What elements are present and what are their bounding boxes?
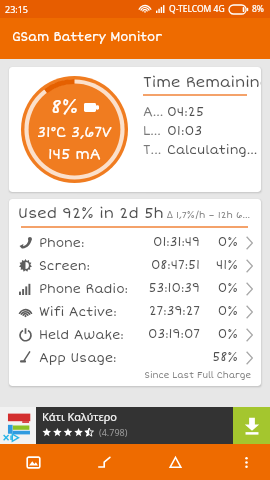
button[interactable]: Charts (80, 444, 128, 480)
staticText: 08:47:51 (145, 258, 200, 273)
staticText: 31°C 3,67V (37, 124, 112, 141)
staticText: 53:10:39 (145, 281, 200, 296)
staticText: Calculating... (167, 142, 258, 157)
staticText: Held Awake: (39, 327, 124, 342)
button[interactable]: Phone Radio: (9, 277, 261, 300)
button[interactable]: Phone: (9, 231, 261, 254)
staticText: 0% (200, 235, 238, 250)
staticText: 145 mA (48, 146, 101, 163)
staticText: 41% (200, 258, 238, 273)
staticText: Κάτι Καλύτερο (42, 409, 117, 424)
staticText: Since Last Full Charge (9, 370, 251, 380)
button[interactable]: Alerts (151, 444, 199, 480)
staticText: 23:15 (5, 3, 29, 15)
staticText: 8% (252, 3, 264, 15)
button[interactable]: Install (233, 407, 270, 444)
staticText: 0% (200, 281, 238, 296)
staticText: Phone: (39, 235, 85, 250)
staticText: L... (143, 123, 167, 138)
staticText: 01:03 (167, 123, 203, 138)
staticText: Phone Radio: (39, 281, 129, 296)
staticText: 58% (200, 350, 238, 365)
staticText: 03:19:07 (145, 327, 200, 342)
staticText: Screen: (39, 258, 91, 273)
staticText: GSam Battery Monitor (12, 30, 162, 45)
button[interactable]: Screenshots (9, 444, 57, 480)
button[interactable]: Wifi Active: (9, 300, 261, 323)
button[interactable]: Held Awake: (9, 323, 261, 346)
button[interactable]: Screen: (9, 254, 261, 277)
button[interactable]: More options (222, 444, 270, 480)
staticText: 0% (200, 327, 238, 342)
staticText: A... (143, 104, 167, 119)
staticText: 01:31:49 (145, 235, 200, 250)
button[interactable]: App Usage: (9, 346, 261, 369)
staticText: (4.798) (99, 426, 128, 438)
staticText: 8% (51, 96, 79, 119)
staticText: Wifi Active: (39, 304, 117, 319)
staticText: Used 92% in 2d 5h (18, 204, 164, 222)
staticText: Time Remaining (143, 73, 261, 91)
staticText: 04:25 (167, 104, 205, 119)
staticText: Q-TELCOM 4G (169, 3, 225, 15)
staticText: T... (143, 142, 167, 157)
button[interactable]: Ad (0, 407, 36, 444)
staticText: Δ 1,7%/h – 12h 6... (167, 208, 251, 220)
staticText: App Usage: (39, 350, 117, 365)
staticText: 0% (200, 304, 238, 319)
staticText: 27:39:27 (145, 304, 200, 319)
